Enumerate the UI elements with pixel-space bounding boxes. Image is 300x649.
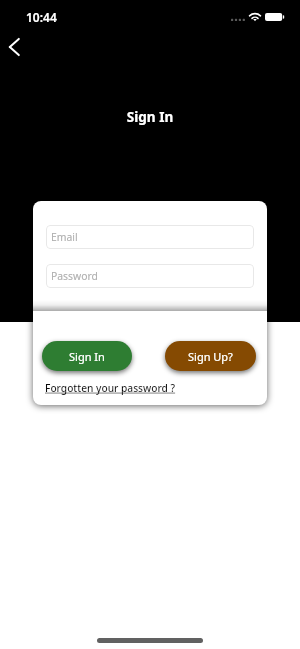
button[interactable]: Password xyxy=(46,264,254,288)
staticText: Email xyxy=(51,230,78,244)
button[interactable]: Sign Up? xyxy=(165,341,256,371)
staticText: 10:44 xyxy=(26,9,57,25)
staticText: Sign In xyxy=(0,108,300,126)
button[interactable]: Back xyxy=(1,31,33,63)
button[interactable]: Sign In xyxy=(42,341,132,371)
staticText: Sign In xyxy=(69,349,105,364)
staticText: Password xyxy=(51,269,98,283)
staticText: Sign Up? xyxy=(188,349,233,364)
button[interactable]: Forgotten your password ? xyxy=(45,381,176,395)
staticText: Forgotten your password ? xyxy=(45,381,176,395)
button[interactable]: Email xyxy=(46,225,254,249)
